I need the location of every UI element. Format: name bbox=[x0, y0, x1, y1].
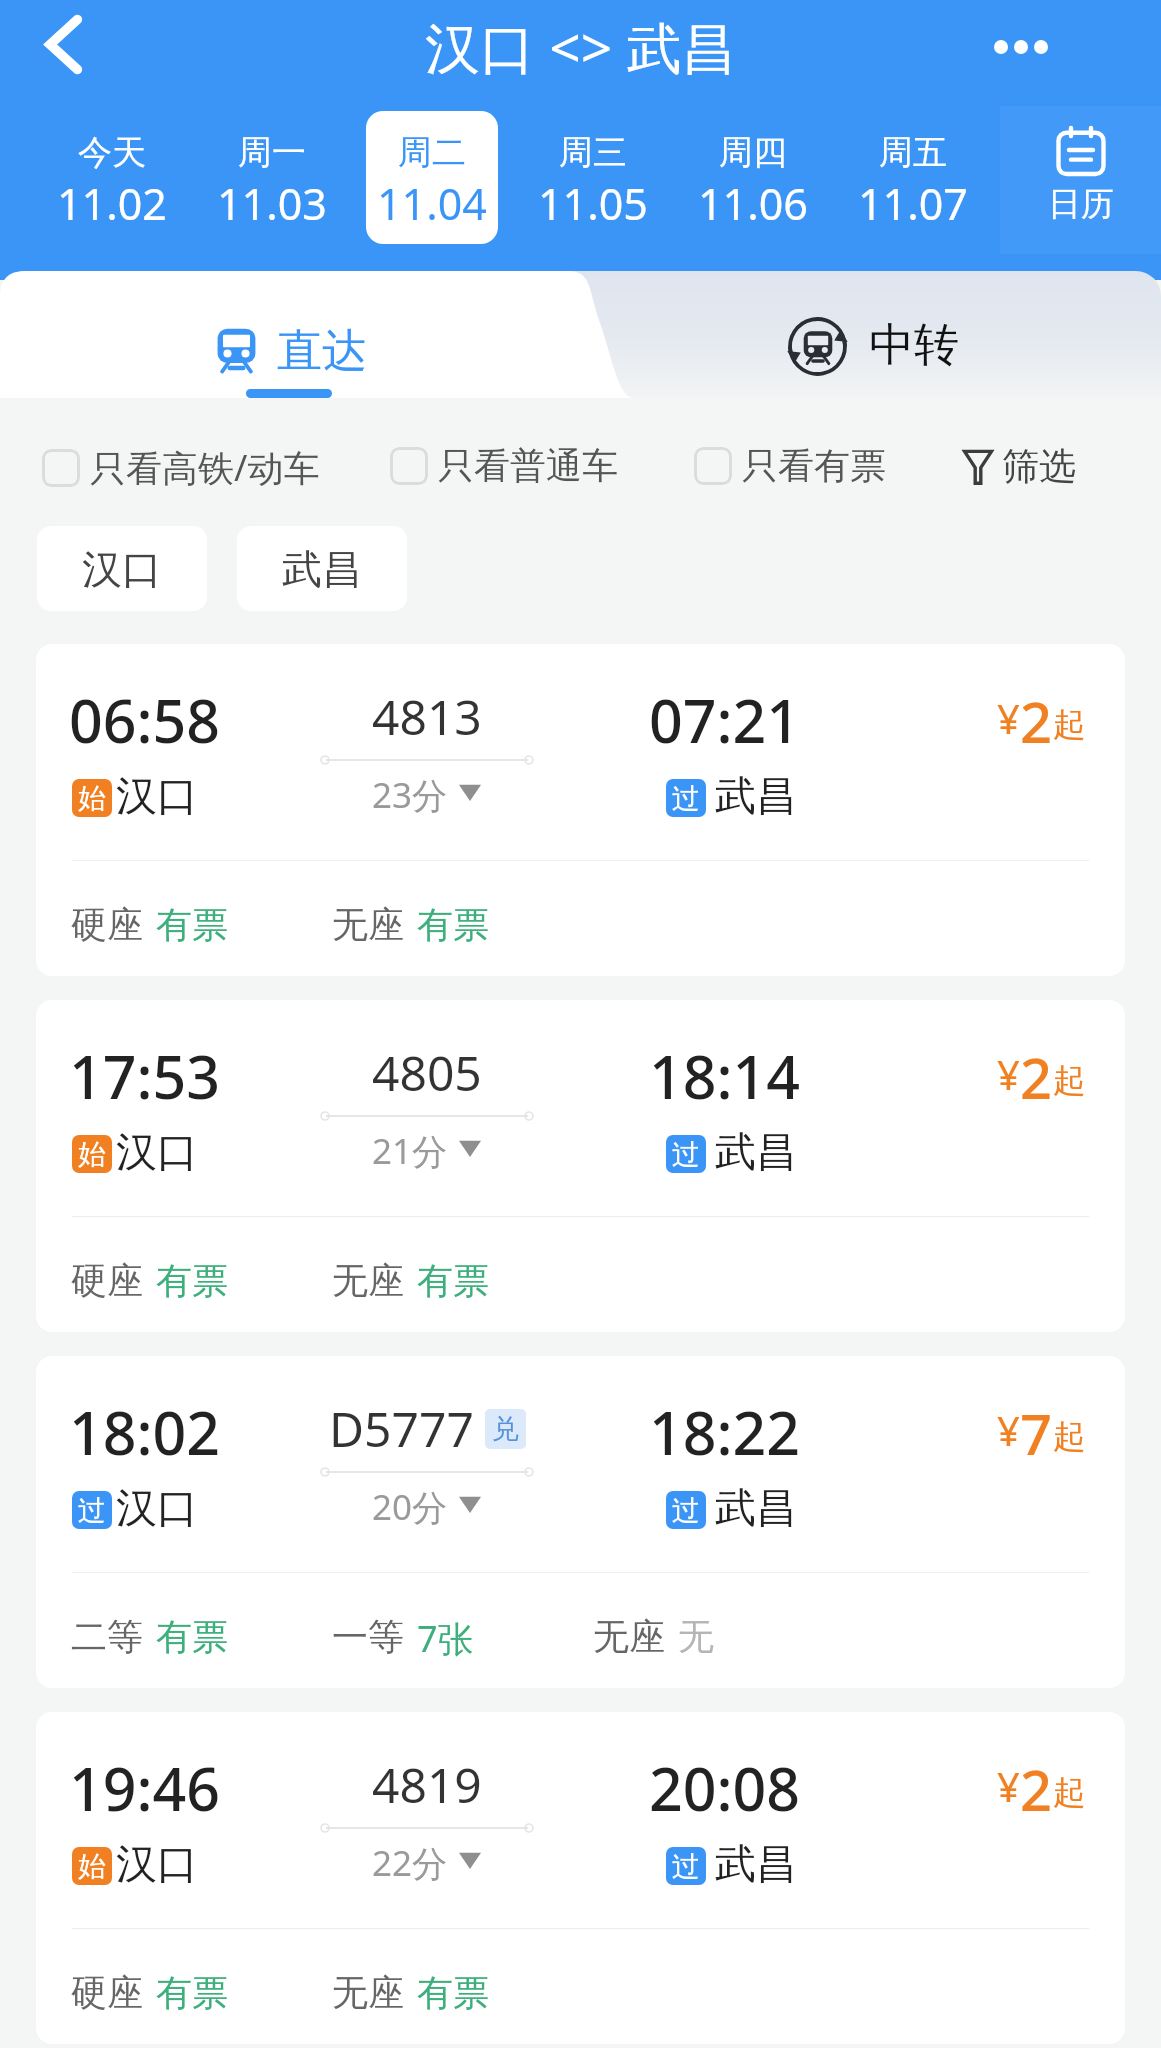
staticText: 11.07 bbox=[858, 174, 968, 233]
staticText: 20分 bbox=[372, 1483, 448, 1531]
staticText: D5777 bbox=[329, 1396, 474, 1461]
button[interactable]: 只看有票 bbox=[694, 443, 886, 488]
staticText: 21分 bbox=[372, 1127, 448, 1175]
staticText: 过 bbox=[672, 1493, 700, 1528]
button[interactable]: 19:46 bbox=[36, 1712, 1125, 2044]
button[interactable]: 06:58 bbox=[36, 644, 1125, 976]
staticText: 只看高铁/动车 bbox=[90, 443, 320, 492]
staticText: 无座 bbox=[332, 902, 404, 947]
staticText: 无座 bbox=[332, 1258, 404, 1303]
staticText: 一等 bbox=[332, 1614, 404, 1659]
staticText: 23分 bbox=[372, 771, 448, 819]
staticText: 07:21 bbox=[649, 680, 801, 760]
staticText: 日历 bbox=[1048, 183, 1114, 225]
staticText: 7张 bbox=[417, 1614, 474, 1663]
staticText: 中转 bbox=[869, 317, 959, 374]
staticText: 二等 bbox=[71, 1614, 143, 1659]
staticText: 硬座 bbox=[71, 902, 143, 947]
staticText: 周四 bbox=[719, 131, 787, 174]
staticText: 11.04 bbox=[377, 174, 487, 233]
button[interactable]: Back bbox=[13, 0, 113, 89]
staticText: 有票 bbox=[156, 1614, 228, 1659]
staticText: 有票 bbox=[156, 1970, 228, 2015]
staticText: 硬座 bbox=[71, 1970, 143, 2015]
button[interactable]: 周二 bbox=[366, 111, 498, 244]
staticText: 汉口 bbox=[116, 1127, 198, 1179]
staticText: 22分 bbox=[372, 1839, 448, 1887]
button[interactable]: 18:02 bbox=[36, 1356, 1125, 1688]
staticText: 有票 bbox=[417, 902, 489, 947]
button[interactable]: 周三 bbox=[527, 111, 659, 244]
staticText: 始 bbox=[78, 1137, 106, 1172]
staticText: 无 bbox=[678, 1614, 714, 1659]
staticText: 起 bbox=[1053, 1416, 1086, 1458]
staticText: 直达 bbox=[277, 323, 367, 380]
staticText: 06:58 bbox=[69, 680, 221, 760]
staticText: 11.02 bbox=[57, 174, 167, 233]
staticText: 18:14 bbox=[649, 1036, 801, 1116]
staticText: 武昌 bbox=[715, 1839, 797, 1891]
staticText: 汉口 bbox=[116, 1839, 198, 1891]
button[interactable]: 17:53 bbox=[36, 1000, 1125, 1332]
staticText: 11.03 bbox=[217, 174, 327, 233]
staticText: 只看普通车 bbox=[438, 443, 618, 488]
button[interactable]: 周四 bbox=[687, 111, 819, 244]
staticText: 起 bbox=[1053, 704, 1086, 746]
button[interactable]: 只看普通车 bbox=[390, 443, 618, 488]
staticText: 过 bbox=[672, 1137, 700, 1172]
staticText: 18:22 bbox=[649, 1392, 801, 1472]
staticText: 17:53 bbox=[69, 1036, 221, 1116]
staticText: 周一 bbox=[238, 131, 306, 174]
staticText: 18:02 bbox=[69, 1392, 221, 1472]
button[interactable]: More options bbox=[971, 0, 1071, 94]
staticText: 2 bbox=[1020, 1751, 1053, 1827]
staticText: 有票 bbox=[156, 1258, 228, 1303]
staticText: 4813 bbox=[372, 684, 482, 749]
button[interactable]: 周一 bbox=[206, 111, 338, 244]
staticText: 过 bbox=[78, 1493, 106, 1528]
staticText: 周二 bbox=[398, 131, 466, 174]
button[interactable]: 只看高铁/动车 bbox=[42, 443, 320, 492]
button[interactable]: 中转 bbox=[580, 271, 1161, 398]
staticText: 筛选 bbox=[1002, 443, 1076, 490]
staticText: 武昌 bbox=[715, 1127, 797, 1179]
button[interactable]: 日历 Calendar bbox=[1000, 106, 1161, 254]
staticText: 始 bbox=[78, 781, 106, 816]
button[interactable]: 筛选 bbox=[959, 438, 1081, 495]
staticText: 始 bbox=[78, 1849, 106, 1884]
staticText: 19:46 bbox=[69, 1748, 221, 1828]
staticText: 今天 bbox=[78, 131, 146, 174]
staticText: 4819 bbox=[372, 1752, 482, 1817]
staticText: 有票 bbox=[417, 1970, 489, 2015]
staticText: 11.05 bbox=[538, 174, 648, 233]
staticText: 2 bbox=[1020, 1039, 1053, 1115]
staticText: 起 bbox=[1053, 1772, 1086, 1814]
staticText: 有票 bbox=[156, 902, 228, 947]
staticText: ¥ bbox=[997, 1047, 1020, 1101]
staticText: 武昌 bbox=[715, 771, 797, 823]
staticText: ¥ bbox=[997, 1403, 1020, 1457]
staticText: 汉口 bbox=[82, 544, 162, 594]
staticText: 过 bbox=[672, 1849, 700, 1884]
staticText: 周五 bbox=[879, 131, 947, 174]
button[interactable]: 周五 bbox=[847, 111, 979, 244]
button[interactable]: 直达 bbox=[0, 271, 580, 398]
button[interactable]: 武昌 bbox=[237, 526, 407, 611]
staticText: 只看有票 bbox=[742, 443, 886, 488]
staticText: 兑 bbox=[492, 1412, 519, 1446]
staticText: 汉口 <> 武昌 bbox=[425, 9, 737, 84]
staticText: 武昌 bbox=[282, 544, 362, 594]
staticText: 4805 bbox=[372, 1040, 482, 1105]
staticText: 11.06 bbox=[698, 174, 808, 233]
staticText: 无座 bbox=[593, 1614, 665, 1659]
button[interactable]: 今天 bbox=[46, 111, 178, 244]
staticText: 过 bbox=[672, 781, 700, 816]
staticText: 武昌 bbox=[715, 1483, 797, 1535]
button[interactable]: 汉口 bbox=[37, 526, 207, 611]
staticText: 7 bbox=[1020, 1395, 1053, 1471]
staticText: 硬座 bbox=[71, 1258, 143, 1303]
staticText: ¥ bbox=[997, 691, 1020, 745]
staticText: ¥ bbox=[997, 1759, 1020, 1813]
staticText: 无座 bbox=[332, 1970, 404, 2015]
staticText: 有票 bbox=[417, 1258, 489, 1303]
